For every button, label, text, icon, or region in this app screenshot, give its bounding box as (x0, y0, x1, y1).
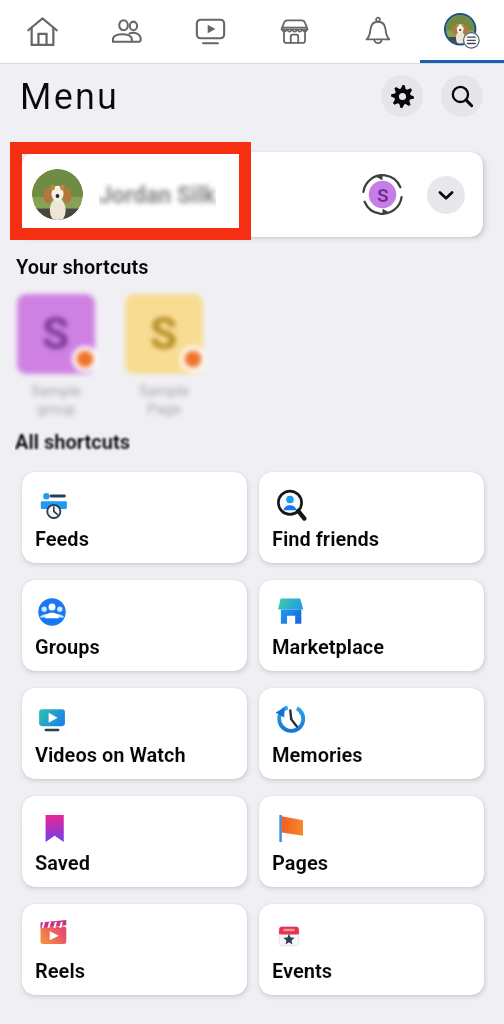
button[interactable]: Jordan Silk (22, 152, 483, 237)
staticText: Marketplace (272, 635, 385, 658)
button[interactable]: Reels (22, 904, 247, 995)
staticText: Memories (272, 743, 363, 766)
staticText: S (150, 308, 178, 360)
button[interactable]: Your profile menu (420, 0, 504, 64)
button[interactable]: Saved (22, 796, 247, 887)
button[interactable]: Videos on Watch (22, 688, 247, 779)
staticText: Find friends (272, 527, 380, 550)
button[interactable]: Settings (381, 75, 423, 117)
staticText: Your shortcuts (16, 255, 149, 278)
button[interactable]: S (125, 294, 203, 374)
staticText: group (37, 400, 76, 418)
staticText: Events (272, 959, 333, 982)
staticText: Menu (20, 76, 120, 118)
button[interactable]: Groups (22, 580, 247, 671)
button[interactable]: Search (441, 75, 483, 117)
button[interactable]: Find friends (259, 472, 484, 563)
button[interactable]: Events (259, 904, 484, 995)
button[interactable]: Expand profile menu (427, 176, 465, 214)
button[interactable]: Video (168, 0, 252, 64)
button[interactable]: Feeds (22, 472, 247, 563)
button[interactable]: Friends (84, 0, 168, 64)
staticText: Pages (272, 851, 328, 874)
staticText: Page (147, 400, 181, 418)
staticText: All shortcuts (15, 430, 130, 453)
button[interactable]: Notifications (336, 0, 420, 64)
button[interactable]: Pages (259, 796, 484, 887)
button[interactable]: Marketplace (252, 0, 336, 64)
staticText: Groups (35, 635, 100, 658)
staticText: Jordan Silk (99, 182, 216, 209)
staticText: Sample (139, 382, 190, 400)
staticText: Feeds (35, 527, 89, 550)
staticText: Videos on Watch (35, 743, 186, 766)
staticText: Reels (35, 959, 85, 982)
button[interactable]: Memories (259, 688, 484, 779)
staticText: Sample (31, 382, 82, 400)
button[interactable]: Marketplace (259, 580, 484, 671)
staticText: Saved (35, 851, 90, 874)
button[interactable]: S (17, 294, 95, 374)
staticText: S (42, 308, 70, 360)
staticText: S (377, 184, 389, 206)
button[interactable]: Home (0, 0, 84, 64)
